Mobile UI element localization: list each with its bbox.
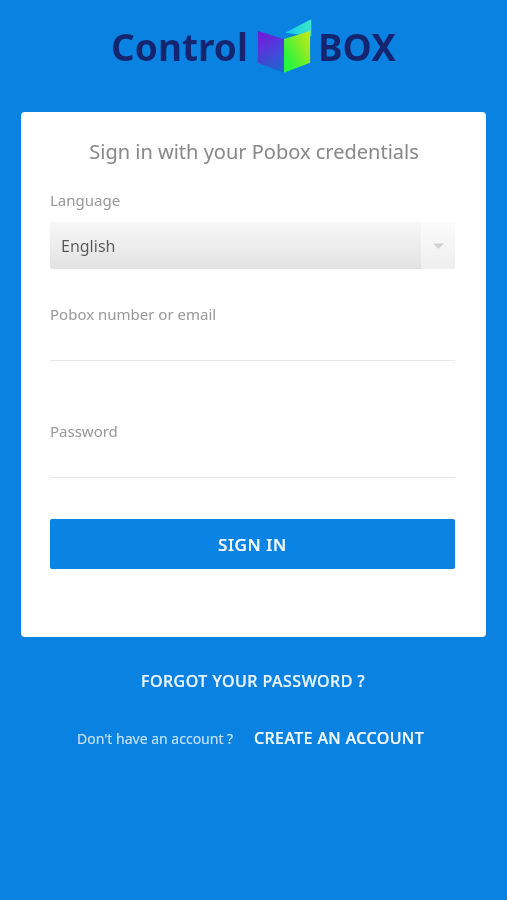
staticText: Password [50, 421, 118, 441]
staticText: Language [50, 190, 121, 210]
staticText: CREATE AN ACCOUNT [254, 727, 425, 749]
staticText: Control [111, 21, 248, 71]
button[interactable]: SIGN IN [50, 519, 455, 569]
button[interactable]: CREATE AN ACCOUNT [248, 722, 431, 754]
staticText: SIGN IN [218, 533, 287, 556]
other: Control Box logo [255, 17, 313, 75]
staticText: Sign in with your Pobox credentials [89, 138, 419, 165]
staticText: Pobox number or email [50, 304, 217, 324]
staticText: BOX [318, 21, 396, 71]
button[interactable]: FORGOT YOUR PASSWORD ? [131, 665, 376, 697]
button[interactable]: Pobox number or email [50, 300, 455, 361]
button[interactable]: English [50, 222, 455, 269]
staticText: Don't have an account ? [77, 729, 234, 748]
staticText: FORGOT YOUR PASSWORD ? [141, 670, 366, 692]
button[interactable]: Password [50, 417, 455, 478]
staticText: English [61, 235, 116, 257]
